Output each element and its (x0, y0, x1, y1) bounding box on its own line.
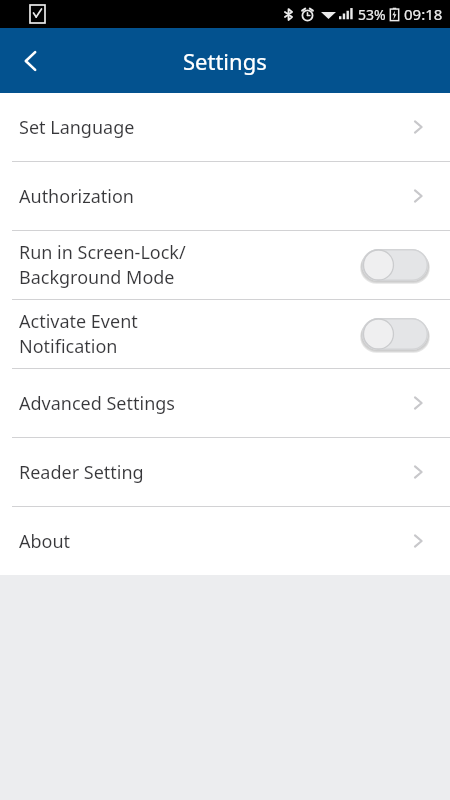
other: Run in Screen-Lock/Background Mode (362, 248, 428, 282)
staticText: Settings (183, 46, 267, 76)
button[interactable]: Authorization (0, 162, 450, 230)
button[interactable]: Set Language (0, 93, 450, 161)
staticText: Run in Screen-Lock/Background Mode (19, 240, 190, 290)
staticText: About (19, 529, 71, 554)
staticText: Reader Setting (19, 460, 144, 485)
button[interactable]: Advanced Settings (0, 369, 450, 437)
staticText: Authorization (19, 184, 134, 209)
button[interactable]: Back (0, 28, 62, 93)
staticText: Set Language (19, 115, 135, 140)
button[interactable]: Activate Event Notification (0, 300, 450, 368)
button[interactable]: About (0, 507, 450, 575)
staticText: 09:18 (404, 4, 443, 24)
other: Activate Event Notification (362, 317, 428, 351)
staticText: 53% (358, 5, 386, 24)
staticText: Activate Event Notification (19, 309, 190, 359)
staticText: Advanced Settings (19, 391, 175, 416)
button[interactable]: Reader Setting (0, 438, 450, 506)
button[interactable]: Run in Screen-Lock/Background Mode (0, 231, 450, 299)
